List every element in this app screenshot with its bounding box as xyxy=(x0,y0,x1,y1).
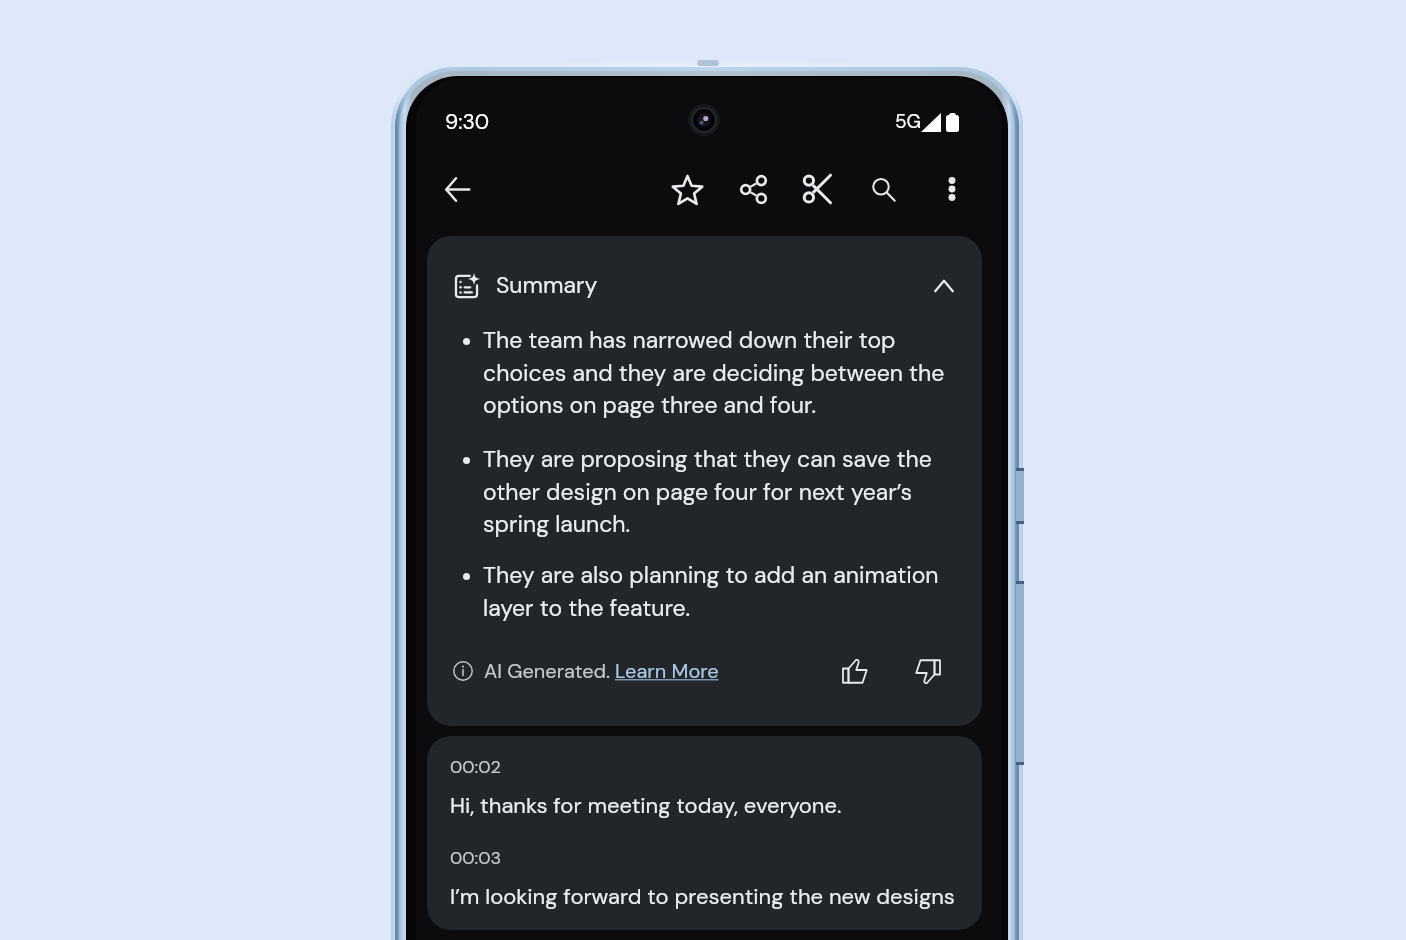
button[interactable]: Thumbs up xyxy=(831,648,877,694)
button[interactable]: Learn More xyxy=(615,658,719,684)
button[interactable]: Cut xyxy=(794,166,840,212)
staticText: 00:03 xyxy=(450,846,502,869)
button[interactable]: Thumbs down xyxy=(905,648,951,694)
button[interactable]: More options xyxy=(929,166,975,212)
button[interactable]: Star xyxy=(664,167,710,213)
staticText: Hi, thanks for meeting today, everyone. xyxy=(450,791,842,820)
staticText: Summary xyxy=(496,270,598,300)
staticText: AI Generated. xyxy=(484,658,611,684)
staticText: 9:30 xyxy=(445,108,490,135)
button[interactable]: Collapse summary xyxy=(921,263,967,309)
staticText: They are proposing that they can save th… xyxy=(483,444,982,539)
button[interactable]: Search xyxy=(860,166,906,212)
button[interactable]: Back xyxy=(434,166,480,212)
staticText: 00:02 xyxy=(450,755,501,778)
staticText: 5G xyxy=(895,109,921,134)
staticText: They are also planning to add an animati… xyxy=(483,560,982,623)
staticText: The team has narrowed down their top cho… xyxy=(483,325,982,420)
button[interactable]: Share xyxy=(730,166,776,212)
staticText: I’m looking forward to presenting the ne… xyxy=(450,882,955,911)
